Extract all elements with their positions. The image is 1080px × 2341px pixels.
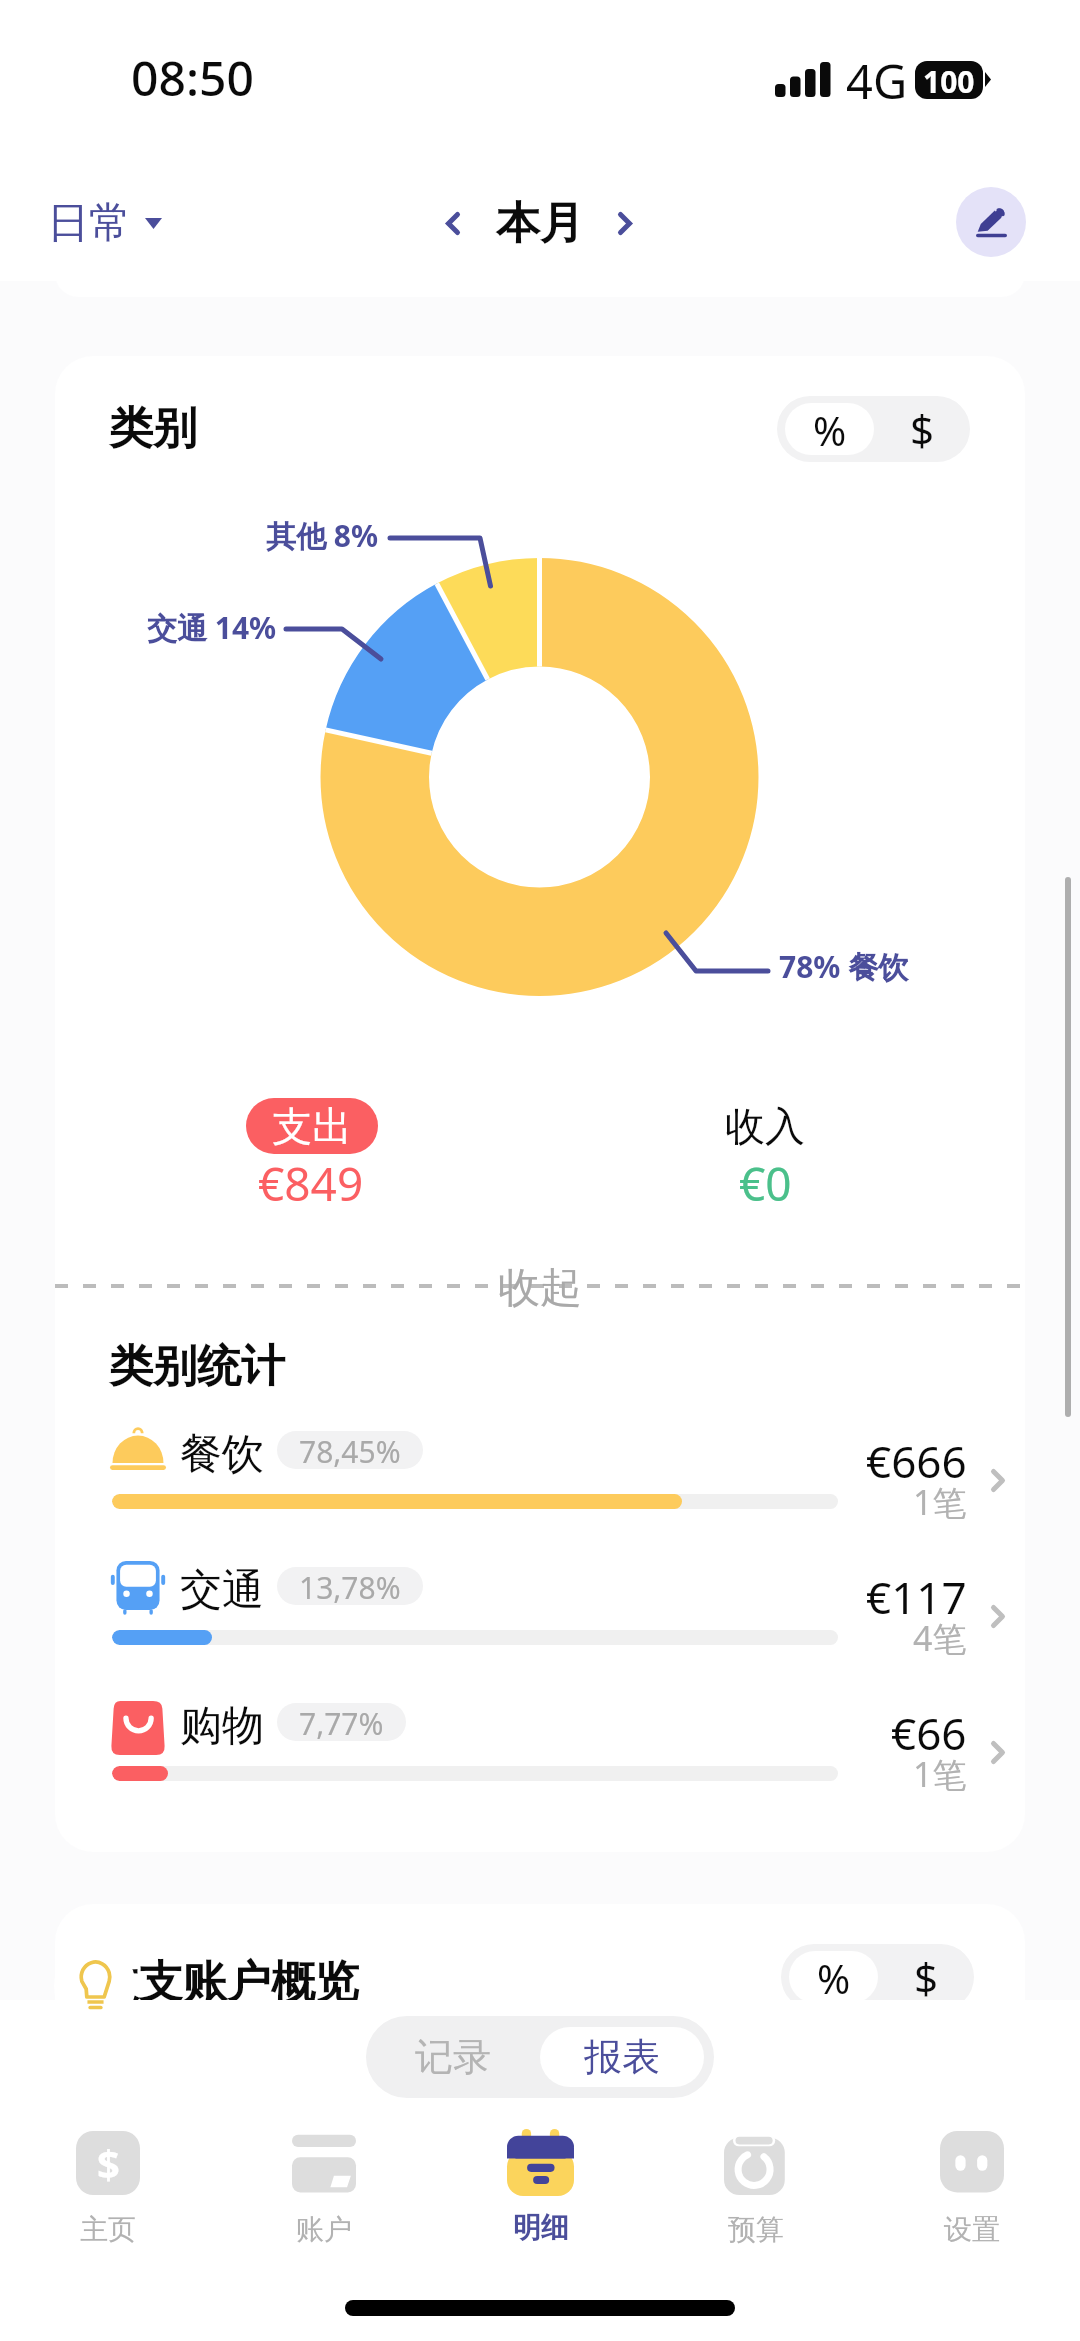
button[interactable]: 交通: [55, 1564, 1025, 1690]
staticText: 4G: [846, 49, 908, 113]
button[interactable]: Next month: [597, 186, 652, 260]
button[interactable]: 设置: [864, 2110, 1080, 2260]
staticText: 购物: [180, 1700, 264, 1753]
button[interactable]: 日常: [34, 186, 175, 260]
button[interactable]: 餐饮: [55, 1428, 1025, 1554]
staticText: $: [914, 1949, 939, 2006]
staticText: 13,78%: [299, 1567, 401, 1605]
staticText: 其他 8%: [266, 515, 379, 556]
staticText: 4笔: [913, 1615, 967, 1661]
button[interactable]: %: [789, 1951, 878, 2003]
staticText: 7,77%: [299, 1703, 384, 1741]
button[interactable]: 收入: [665, 1098, 865, 1154]
button[interactable]: 明细: [432, 2110, 648, 2260]
staticText: 本月: [496, 196, 584, 251]
staticText: 08:50: [131, 45, 254, 110]
staticText: 明细: [513, 2210, 569, 2245]
staticText: €849: [258, 1152, 364, 1215]
staticText: %: [817, 1951, 851, 2003]
staticText: 78,45%: [299, 1431, 401, 1469]
staticText: $: [97, 2136, 120, 2190]
button[interactable]: 报表: [540, 2027, 704, 2087]
button[interactable]: Tips: [54, 1945, 136, 2027]
staticText: €666: [866, 1431, 967, 1491]
staticText: 1笔: [913, 1751, 967, 1797]
button[interactable]: 支出: [246, 1098, 378, 1154]
staticText: 餐饮: [180, 1428, 264, 1481]
staticText: 报表: [584, 2033, 660, 2081]
staticText: 账户: [296, 2212, 352, 2247]
button[interactable]: 记录: [366, 2016, 540, 2098]
staticText: €0: [739, 1152, 792, 1215]
staticText: 交通 14%: [147, 607, 277, 648]
staticText: %: [813, 403, 847, 455]
staticText: 78% 餐饮: [779, 946, 909, 987]
staticText: 100: [923, 61, 975, 102]
button[interactable]: 账户: [216, 2110, 432, 2260]
staticText: 记录: [415, 2033, 491, 2081]
button[interactable]: 预算: [648, 2110, 864, 2260]
staticText: 支出: [272, 1101, 352, 1151]
button[interactable]: 购物: [55, 1700, 1025, 1826]
button[interactable]: $: [878, 1944, 974, 2010]
staticText: $: [910, 401, 935, 458]
staticText: 1笔: [913, 1479, 967, 1525]
button[interactable]: $: [874, 396, 970, 462]
staticText: €66: [891, 1703, 967, 1763]
button[interactable]: $: [0, 2110, 216, 2260]
staticText: 交通: [180, 1564, 264, 1617]
button[interactable]: 收起: [55, 1262, 1025, 1310]
staticText: 类别统计: [109, 1339, 285, 1394]
staticText: 类别: [109, 401, 197, 456]
button[interactable]: Edit: [923, 154, 1059, 290]
staticText: 收支账户概览: [95, 1955, 359, 2010]
staticText: €117: [866, 1567, 967, 1627]
staticText: 收入: [725, 1101, 805, 1151]
staticText: 日常: [47, 197, 131, 250]
button[interactable]: %: [785, 403, 874, 455]
staticText: 预算: [728, 2212, 784, 2247]
button[interactable]: Previous month: [425, 186, 480, 260]
staticText: 收起: [498, 1262, 582, 1310]
staticText: 主页: [80, 2212, 136, 2247]
staticText: 设置: [944, 2212, 1000, 2247]
